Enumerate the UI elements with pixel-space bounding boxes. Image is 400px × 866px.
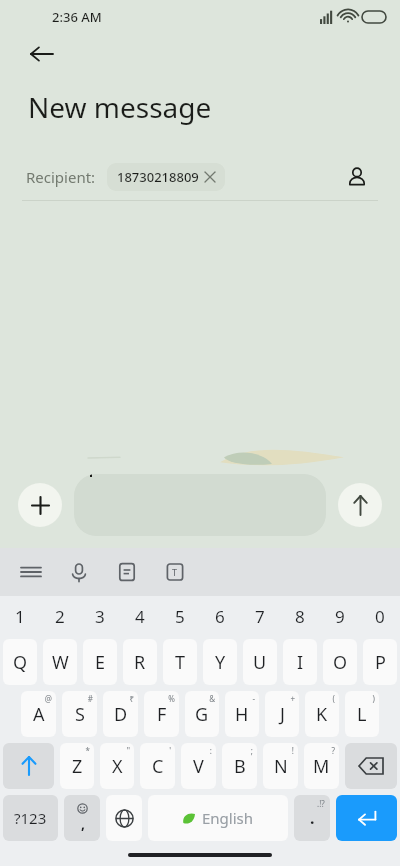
button[interactable]: % xyxy=(144,691,179,737)
staticText: % xyxy=(168,693,175,704)
button[interactable]: Clipboard xyxy=(114,559,140,585)
staticText: ?123 xyxy=(14,808,47,828)
button[interactable]: ) xyxy=(345,691,379,737)
button[interactable]: Back xyxy=(22,34,62,74)
button[interactable]: 1 xyxy=(0,596,40,636)
button[interactable]: Period xyxy=(294,795,330,841)
button[interactable]: ? xyxy=(304,743,339,789)
button[interactable]: 6 xyxy=(200,596,240,636)
button[interactable]: Change language xyxy=(106,795,142,841)
button[interactable]: ' xyxy=(140,743,175,789)
button[interactable]: 8 xyxy=(280,596,320,636)
button[interactable]: E xyxy=(83,639,117,685)
button[interactable]: 7 xyxy=(240,596,280,636)
button[interactable]: ?123 xyxy=(3,795,58,841)
staticText: ? xyxy=(331,745,335,756)
button[interactable]: Y xyxy=(203,639,237,685)
staticText: 8 xyxy=(295,605,305,628)
staticText: 4 xyxy=(135,605,145,628)
staticText: E xyxy=(95,650,106,675)
staticText: " xyxy=(126,745,130,756)
staticText: H xyxy=(235,702,249,727)
button[interactable]: 18730218809 xyxy=(107,163,225,191)
staticText: P xyxy=(375,650,386,675)
button[interactable]: & xyxy=(185,691,219,737)
button[interactable]: ₹ xyxy=(103,691,138,737)
button[interactable]: R xyxy=(123,639,157,685)
button[interactable]: Send xyxy=(338,483,382,527)
button[interactable]: 3 xyxy=(80,596,120,636)
button[interactable]: 2 xyxy=(40,596,80,636)
staticText: 6 xyxy=(215,605,225,628)
button[interactable]: I xyxy=(283,639,317,685)
staticText: ₹ xyxy=(129,693,134,704)
button[interactable]: T xyxy=(163,639,197,685)
staticText: T xyxy=(175,650,186,675)
staticText: @ xyxy=(44,693,52,704)
button[interactable]: Emoji and comma xyxy=(64,795,100,841)
staticText: English xyxy=(202,808,254,828)
staticText: # xyxy=(87,693,93,704)
staticText: * xyxy=(85,745,90,756)
staticText: W xyxy=(52,650,69,675)
staticText: 1 xyxy=(15,605,25,628)
staticText: G xyxy=(195,702,209,727)
staticText: A xyxy=(33,702,45,727)
staticText: Z xyxy=(72,754,83,779)
button[interactable]: @ xyxy=(21,691,56,737)
staticText: U xyxy=(253,650,267,675)
button[interactable]: W xyxy=(43,639,77,685)
button[interactable]: ( xyxy=(305,691,339,737)
button[interactable]: Q xyxy=(3,639,37,685)
staticText: D xyxy=(114,702,128,727)
staticText: 2 xyxy=(55,605,65,628)
staticText: T xyxy=(172,566,178,578)
staticText: New message xyxy=(28,88,212,126)
button[interactable]: + xyxy=(265,691,299,737)
button[interactable]: - xyxy=(225,691,259,737)
button[interactable]: Backspace xyxy=(345,743,397,789)
staticText: Q xyxy=(13,650,28,675)
button[interactable]: Voice input xyxy=(66,559,92,585)
button[interactable]: Add attachment xyxy=(18,483,62,527)
button[interactable]: Enter xyxy=(336,795,397,841)
button[interactable]: English xyxy=(148,795,288,841)
button[interactable]: # xyxy=(62,691,97,737)
button[interactable]: Menu xyxy=(18,559,44,585)
button[interactable]: : xyxy=(181,743,216,789)
button[interactable]: 4 xyxy=(120,596,160,636)
staticText: ' xyxy=(169,745,171,756)
staticText: 7 xyxy=(255,605,265,628)
button[interactable]: Shift xyxy=(3,743,54,789)
staticText: N xyxy=(274,754,288,779)
button[interactable] xyxy=(74,474,326,536)
button[interactable]: ; xyxy=(222,743,257,789)
staticText: 3 xyxy=(95,605,105,628)
button[interactable]: U xyxy=(243,639,277,685)
staticText: C xyxy=(152,754,164,779)
button[interactable]: 9 xyxy=(320,596,360,636)
staticText: M xyxy=(313,754,330,779)
staticText: ( xyxy=(332,693,335,704)
staticText: F xyxy=(157,702,167,727)
button[interactable]: ! xyxy=(263,743,298,789)
staticText: R xyxy=(134,650,146,675)
button[interactable]: " xyxy=(100,743,134,789)
button[interactable]: * xyxy=(60,743,94,789)
staticText: + xyxy=(290,693,295,704)
button[interactable]: 5 xyxy=(160,596,200,636)
button[interactable]: Choose contact xyxy=(340,160,374,194)
staticText: B xyxy=(234,754,246,779)
button[interactable]: O xyxy=(323,639,357,685)
staticText: 5 xyxy=(175,605,185,628)
staticText: O xyxy=(333,650,348,675)
button[interactable]: Text format xyxy=(162,559,188,585)
staticText: V xyxy=(193,754,204,779)
staticText: . xyxy=(310,807,315,829)
staticText: J xyxy=(280,702,285,727)
button[interactable]: 0 xyxy=(360,596,400,636)
staticText: X xyxy=(112,754,123,779)
staticText: S xyxy=(75,702,85,727)
button[interactable]: P xyxy=(363,639,397,685)
staticText: 9 xyxy=(335,605,345,628)
